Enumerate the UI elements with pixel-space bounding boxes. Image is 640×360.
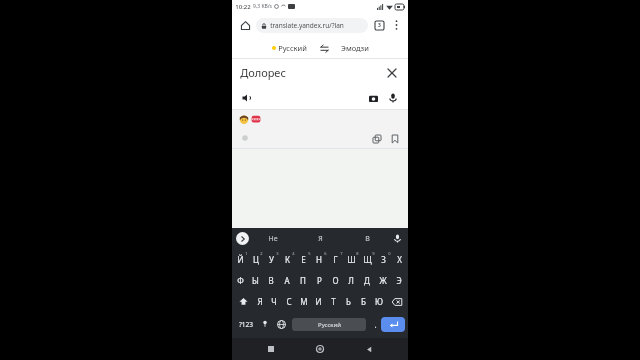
button[interactable]: Voice typing [391, 232, 404, 245]
button[interactable]: Ж [375, 270, 391, 291]
button[interactable]: Не [249, 228, 297, 249]
staticText: translate.yandex.ru/?lan [270, 21, 344, 30]
button[interactable]: Swap languages [317, 41, 331, 55]
button[interactable]: Voice input [386, 91, 400, 105]
staticText: Н [316, 254, 322, 265]
staticText: Ц [253, 254, 259, 265]
staticText: 4 [292, 251, 295, 256]
button[interactable]: П [295, 270, 311, 291]
staticText: 3 [378, 22, 381, 29]
staticText: Ф [237, 275, 244, 286]
button[interactable]: Эмодзи [339, 41, 371, 55]
staticText: 9,3 KB/s [253, 3, 272, 10]
button[interactable]: О [327, 270, 343, 291]
button[interactable]: М [296, 291, 311, 312]
staticText: Ж [379, 275, 387, 286]
button[interactable]: Русский [292, 318, 366, 331]
button[interactable]: Ш [343, 249, 359, 270]
button[interactable]: Ю [371, 291, 386, 312]
staticText: 7 [340, 251, 343, 256]
button[interactable]: Camera [366, 91, 380, 105]
button[interactable]: Home [237, 17, 253, 33]
button[interactable]: Н [311, 249, 327, 270]
staticText: Т [331, 296, 336, 307]
staticText: . [374, 319, 377, 330]
button[interactable]: Щ [359, 249, 375, 270]
button[interactable]: Emoji [257, 312, 273, 336]
button[interactable]: Back [359, 339, 379, 359]
button[interactable]: Tabs [372, 18, 386, 32]
staticText: Не [268, 234, 278, 244]
staticText: Ь [346, 296, 351, 307]
button[interactable]: Д [359, 270, 375, 291]
button[interactable]: Bookmark [388, 132, 401, 145]
button[interactable]: Recent apps [261, 339, 281, 359]
button[interactable]: Я [253, 291, 267, 312]
button[interactable]: Ч [267, 291, 281, 312]
button[interactable]: Я [297, 228, 344, 249]
button[interactable]: Shift [233, 291, 253, 312]
staticText: М [300, 296, 308, 307]
staticText: Д [364, 275, 370, 286]
button[interactable]: У [263, 249, 279, 270]
button[interactable]: В [344, 228, 391, 249]
button[interactable]: Enter [381, 317, 405, 332]
button[interactable]: С [281, 291, 296, 312]
staticText: Р [317, 275, 322, 286]
staticText: 5 [308, 251, 311, 256]
staticText: Й [237, 254, 244, 265]
button[interactable]: Е [295, 249, 311, 270]
staticText: А [284, 275, 290, 286]
staticText: Ч [271, 296, 277, 307]
staticText: У [269, 254, 274, 265]
button[interactable]: Русский [270, 41, 309, 55]
button[interactable]: More suggestions [236, 232, 249, 245]
button[interactable]: Ь [341, 291, 356, 312]
button[interactable]: Listen translation [239, 132, 251, 144]
staticText: 2 [260, 251, 263, 256]
staticText: Я [318, 234, 323, 244]
button[interactable]: Backspace [386, 291, 407, 312]
staticText: В [365, 234, 370, 244]
staticText: Щ [363, 254, 372, 265]
button[interactable]: Р [311, 270, 327, 291]
staticText: Ю [375, 296, 383, 307]
button[interactable]: ?123 [235, 312, 257, 336]
staticText: Е [301, 254, 306, 265]
button[interactable]: И [311, 291, 326, 312]
button[interactable]: More options [389, 18, 403, 32]
button[interactable]: Copy [370, 132, 383, 145]
button[interactable]: Listen [240, 91, 254, 105]
button[interactable]: Change keyboard language [273, 312, 289, 336]
button[interactable]: Ы [248, 270, 263, 291]
staticText: Долорес [240, 65, 286, 80]
staticText: 3 [276, 251, 279, 256]
button[interactable]: З [375, 249, 391, 270]
button[interactable]: Э [391, 270, 407, 291]
button[interactable]: Т [326, 291, 341, 312]
staticText: 8 [356, 251, 359, 256]
button[interactable]: Б [356, 291, 371, 312]
staticText: ?123 [239, 320, 253, 329]
button[interactable]: К [279, 249, 295, 270]
button[interactable]: А [279, 270, 295, 291]
staticText: 9 [372, 251, 375, 256]
button[interactable]: Х [391, 249, 407, 270]
button[interactable]: Ф [233, 270, 248, 291]
button[interactable]: Й [233, 249, 248, 270]
staticText: И [315, 296, 322, 307]
staticText: Х [397, 254, 402, 265]
staticText: К [285, 254, 290, 265]
button[interactable]: Home [310, 339, 330, 359]
button[interactable]: В [263, 270, 279, 291]
button[interactable]: . [369, 312, 381, 336]
button[interactable]: Г [327, 249, 343, 270]
button[interactable]: Л [343, 270, 359, 291]
button[interactable]: Clear [384, 65, 400, 81]
staticText: Л [348, 275, 354, 286]
button[interactable]: translate.yandex.ru/?lan [256, 18, 368, 33]
button[interactable]: Ц [248, 249, 263, 270]
staticText: С [286, 296, 292, 307]
staticText: В [268, 275, 274, 286]
staticText: Ы [252, 275, 259, 286]
